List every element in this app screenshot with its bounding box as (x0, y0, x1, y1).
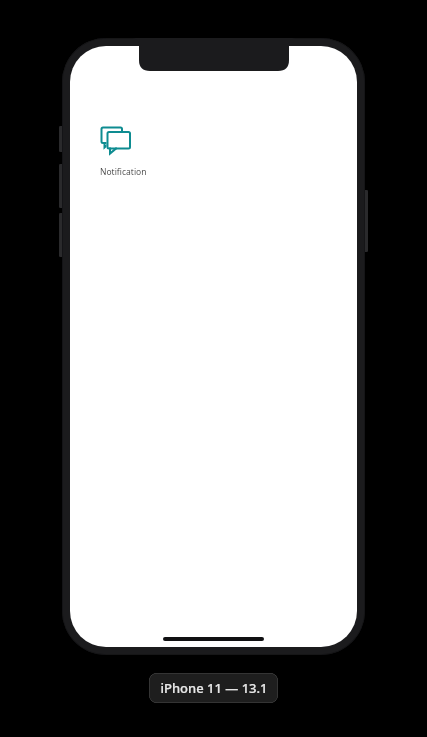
staticText: iPhone 11 — 13.1 (160, 679, 268, 697)
button[interactable]: Notification (98, 124, 149, 180)
button[interactable]: iPhone 11 — 13.1 (149, 673, 278, 703)
other: Notification (100, 126, 136, 162)
staticText: Notification (100, 166, 147, 178)
